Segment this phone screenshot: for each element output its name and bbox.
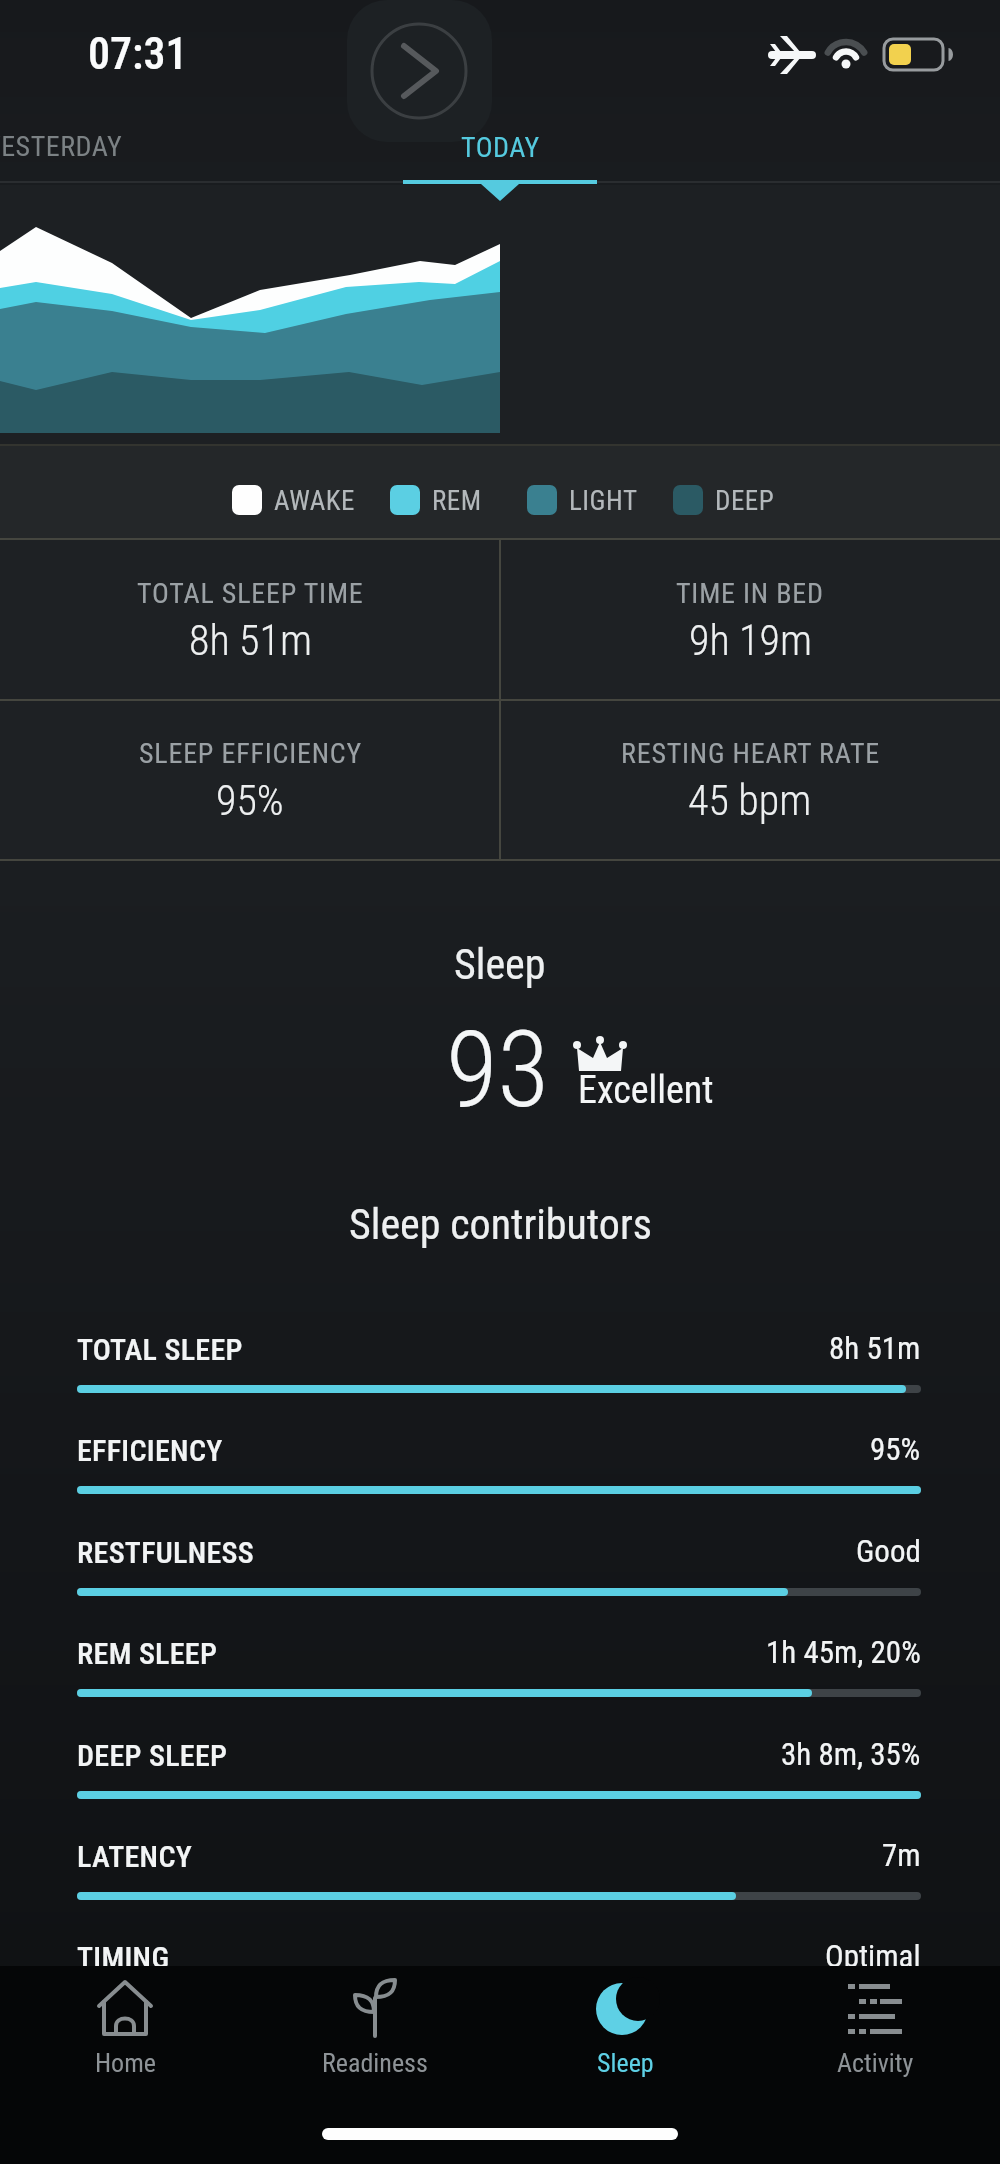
staticText: 93 — [446, 1008, 550, 1132]
button[interactable]: Readiness — [250, 1966, 500, 2164]
button[interactable] — [347, 0, 492, 142]
staticText: Sleep contributors — [349, 1200, 652, 1249]
staticText: 95% — [870, 1431, 921, 1467]
button[interactable]: Sleep — [500, 1966, 750, 2164]
staticText: TODAY — [461, 131, 540, 164]
staticText: TIME IN BED — [676, 577, 824, 610]
staticText: SLEEP EFFICIENCY — [139, 737, 362, 770]
staticText: LATENCY — [77, 1839, 193, 1874]
button[interactable]: TIME IN BED — [500, 540, 1000, 700]
button[interactable] — [0, 112, 220, 182]
button[interactable]: TODAY — [400, 112, 600, 182]
button[interactable]: TOTAL SLEEP TIME — [0, 540, 500, 700]
button[interactable]: RESTING HEART RATE — [500, 700, 1000, 860]
staticText: LIGHT — [569, 485, 638, 515]
staticText: Excellent — [578, 1068, 714, 1113]
staticText: 45 bpm — [688, 776, 812, 825]
staticText: AWAKE — [274, 485, 355, 515]
staticText: 9h 19m — [689, 616, 812, 665]
button[interactable]: TOTAL SLEEP — [0, 1319, 1000, 1407]
staticText: 8h 51m — [189, 616, 312, 665]
staticText: 3h 8m, 35% — [781, 1736, 921, 1772]
button[interactable]: LATENCY — [0, 1826, 1000, 1914]
button[interactable]: RESTFULNESS — [0, 1522, 1000, 1610]
button[interactable]: DEEP SLEEP — [0, 1725, 1000, 1813]
staticText: 7m — [882, 1837, 921, 1873]
staticText: Optimal — [825, 1938, 921, 1974]
staticText: Readiness — [322, 2048, 428, 2078]
staticText: TOTAL SLEEP TIME — [137, 577, 364, 610]
staticText: 07:31 — [88, 28, 188, 80]
staticText: REM SLEEP — [77, 1636, 218, 1671]
staticText: 1h 45m, 20% — [766, 1634, 921, 1670]
staticText: Home — [95, 2048, 156, 2078]
button[interactable]: TIMING — [0, 1927, 1000, 2015]
staticText: TIMING — [77, 1940, 170, 1975]
button[interactable]: Home — [0, 1966, 250, 2164]
staticText: DEEP — [715, 485, 775, 515]
staticText: EFFICIENCY — [77, 1433, 223, 1468]
staticText: RESTFULNESS — [77, 1535, 255, 1570]
button[interactable]: Activity — [750, 1966, 1000, 2164]
staticText: DEEP SLEEP — [77, 1738, 228, 1773]
staticText: RESTING HEART RATE — [621, 737, 880, 770]
button[interactable]: REM SLEEP — [0, 1623, 1000, 1711]
staticText: Sleep — [454, 940, 546, 989]
button[interactable]: SLEEP EFFICIENCY — [0, 700, 500, 860]
staticText: 95% — [216, 776, 284, 825]
staticText: Sleep — [597, 2048, 654, 2078]
staticText: Activity — [837, 2048, 914, 2078]
staticText: Good — [856, 1533, 921, 1569]
staticText: 8h 51m — [829, 1330, 921, 1366]
staticText: REM — [432, 485, 482, 515]
button[interactable]: EFFICIENCY — [0, 1420, 1000, 1508]
staticText: TOTAL SLEEP — [77, 1332, 243, 1367]
staticText: YESTERDAY — [0, 130, 123, 163]
